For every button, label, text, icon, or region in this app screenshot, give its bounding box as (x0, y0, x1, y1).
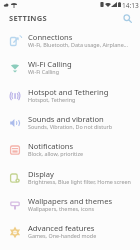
button[interactable]: Display (0, 167, 140, 194)
staticText: Wi-Fi Calling (28, 68, 59, 75)
staticText: SETTINGS (9, 13, 47, 23)
staticText: Display (28, 169, 54, 179)
button[interactable]: Wi-Fi Calling (0, 57, 140, 84)
button[interactable]: Connections (0, 30, 140, 57)
staticText: Games, One-handed mode (28, 232, 97, 239)
staticText: Brightness, Blue light filter, Home scre… (28, 178, 131, 185)
button[interactable]: Sounds and vibration (0, 112, 140, 139)
staticText: Connections (28, 32, 73, 42)
staticText: Wi-Fi, Bluetooth, Data usage, Airplane..… (28, 41, 129, 48)
staticText: Advanced features (28, 223, 95, 233)
button[interactable]: Advanced features (0, 221, 140, 248)
staticText: Hotspot and Tethering (28, 87, 109, 97)
staticText: Wi-Fi Calling (28, 59, 72, 69)
staticText: Wallpapers and themes (28, 196, 113, 206)
button[interactable]: Notifications (0, 139, 140, 166)
staticText: 14:13 (122, 1, 139, 10)
staticText: Block, allow, prioritize (28, 150, 84, 157)
button[interactable]: Hotspot and Tethering (0, 85, 140, 112)
staticText: Sounds, Vibration, Do not disturb (28, 123, 113, 130)
staticText: Notifications (28, 141, 74, 151)
staticText: Sounds and vibration (28, 114, 104, 124)
button[interactable]: Wallpapers and themes (0, 194, 140, 221)
staticText: Hotspot, Tethering (28, 96, 76, 103)
button[interactable]: Search (119, 10, 135, 26)
staticText: Wallpapers, themes, icons (28, 205, 95, 212)
